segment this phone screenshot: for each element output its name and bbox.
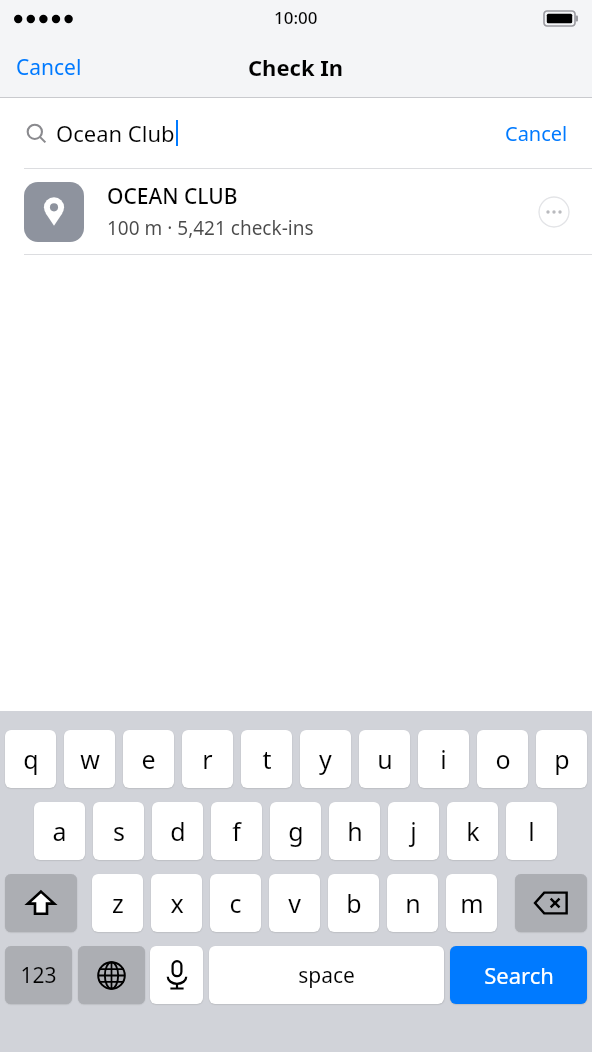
staticText: i	[440, 742, 447, 776]
button[interactable]: u	[359, 730, 410, 788]
button[interactable]: 123	[5, 946, 72, 1004]
staticText: n	[405, 886, 421, 920]
button[interactable]: Shift	[5, 874, 77, 932]
staticText: OCEAN CLUB	[107, 182, 238, 211]
staticText: f	[232, 814, 241, 848]
button[interactable]: d	[152, 802, 203, 860]
button[interactable]: f	[211, 802, 262, 860]
staticText: r	[202, 742, 213, 776]
button[interactable]: k	[447, 802, 498, 860]
button[interactable]: Change keyboard	[78, 946, 145, 1004]
staticText: space	[298, 961, 355, 990]
staticText: g	[288, 814, 304, 848]
staticText: d	[170, 814, 186, 848]
button[interactable]: space	[209, 946, 444, 1004]
staticText: 100 m · 5,421 check-ins	[107, 215, 314, 241]
staticText: x	[170, 886, 184, 920]
button[interactable]: j	[388, 802, 439, 860]
staticText: y	[319, 742, 332, 776]
button[interactable]: o	[477, 730, 528, 788]
button[interactable]: v	[269, 874, 320, 932]
staticText: m	[460, 886, 484, 920]
button[interactable]: l	[506, 802, 557, 860]
staticText: w	[80, 742, 100, 776]
staticText: Cancel	[505, 120, 568, 147]
staticText: u	[377, 742, 393, 776]
button[interactable]: n	[387, 874, 438, 932]
button[interactable]: b	[328, 874, 379, 932]
button[interactable]: w	[64, 730, 115, 788]
staticText: Check In	[248, 52, 344, 82]
button[interactable]: r	[182, 730, 233, 788]
button[interactable]: Cancel	[6, 47, 92, 88]
staticText: t	[262, 742, 272, 776]
button[interactable]: y	[300, 730, 351, 788]
staticText: o	[495, 742, 511, 776]
button[interactable]: Backspace	[515, 874, 587, 932]
staticText: z	[112, 886, 124, 920]
staticText: a	[52, 814, 67, 848]
button[interactable]: t	[241, 730, 292, 788]
button[interactable]: i	[418, 730, 469, 788]
button[interactable]: x	[151, 874, 202, 932]
button[interactable]: m	[446, 874, 497, 932]
staticText: j	[410, 814, 417, 848]
staticText: p	[554, 742, 570, 776]
button[interactable]: Cancel	[497, 114, 576, 153]
button[interactable]: c	[210, 874, 261, 932]
button[interactable]: a	[34, 802, 85, 860]
staticText: Ocean Club	[56, 118, 175, 148]
button[interactable]: OCEAN CLUB	[0, 169, 592, 254]
button[interactable]: z	[92, 874, 143, 932]
staticText: 10:00	[274, 6, 318, 29]
button[interactable]: More options	[538, 196, 570, 228]
staticText: v	[288, 886, 301, 920]
button[interactable]: Search	[450, 946, 587, 1004]
button[interactable]: Dictate	[150, 946, 203, 1004]
button[interactable]: p	[536, 730, 587, 788]
button[interactable]: e	[123, 730, 174, 788]
staticText: c	[229, 886, 242, 920]
staticText: e	[141, 742, 156, 776]
button[interactable]: q	[5, 730, 56, 788]
staticText: Search	[484, 960, 554, 990]
staticText: Cancel	[16, 53, 82, 82]
button[interactable]: g	[270, 802, 321, 860]
button[interactable]: s	[93, 802, 144, 860]
button[interactable]: h	[329, 802, 380, 860]
staticText: k	[466, 814, 480, 848]
staticText: h	[347, 814, 363, 848]
staticText: b	[346, 886, 362, 920]
staticText: s	[113, 814, 125, 848]
staticText: q	[23, 742, 39, 776]
staticText: 123	[20, 961, 57, 990]
staticText: l	[528, 814, 535, 848]
